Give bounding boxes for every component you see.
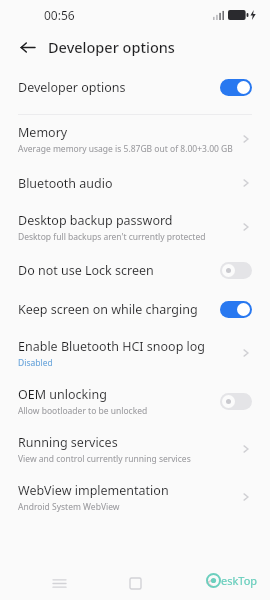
- button[interactable]: WebView implementation: [0, 473, 270, 521]
- staticText: Average memory usage is 5.87GB out of 8.…: [18, 143, 233, 155]
- button[interactable]: Memory: [0, 115, 270, 163]
- button[interactable]: Bluetooth audio: [0, 163, 270, 203]
- staticText: View and control currently running servi…: [18, 453, 191, 465]
- staticText: Allow bootloader to be unlocked: [18, 405, 148, 417]
- staticText: Do not use Lock screen: [18, 262, 220, 279]
- button[interactable]: Recents: [42, 566, 76, 600]
- staticText: Desktop full backups aren't currently pr…: [18, 231, 206, 243]
- button[interactable]: OEM unlocking: [0, 377, 270, 425]
- staticText: Enable Bluetooth HCI snoop log: [18, 338, 206, 355]
- button[interactable]: Home: [118, 566, 152, 600]
- staticText: eskTop: [221, 573, 258, 588]
- staticText: 00:56: [44, 7, 75, 23]
- staticText: Disabled: [18, 357, 53, 369]
- staticText: Keep screen on while charging: [18, 301, 220, 318]
- staticText: OEM unlocking: [18, 386, 107, 403]
- staticText: Desktop backup password: [18, 212, 173, 229]
- button[interactable]: Back: [194, 566, 228, 600]
- button[interactable]: Desktop backup password: [0, 203, 270, 251]
- staticText: Bluetooth audio: [18, 175, 113, 192]
- staticText: Memory: [18, 124, 68, 141]
- button[interactable]: Back: [12, 32, 42, 62]
- staticText: Running services: [18, 434, 118, 451]
- button[interactable]: Keep screen on while charging: [0, 290, 270, 329]
- button[interactable]: Developer options: [0, 70, 270, 104]
- staticText: Developer options: [48, 37, 175, 57]
- button[interactable]: Enable Bluetooth HCI snoop log: [0, 329, 270, 377]
- button[interactable]: Do not use Lock screen: [0, 251, 270, 290]
- staticText: Android System WebView: [18, 501, 120, 513]
- staticText: Developer options: [18, 79, 220, 96]
- staticText: WebView implementation: [18, 482, 169, 499]
- button[interactable]: Running services: [0, 425, 270, 473]
